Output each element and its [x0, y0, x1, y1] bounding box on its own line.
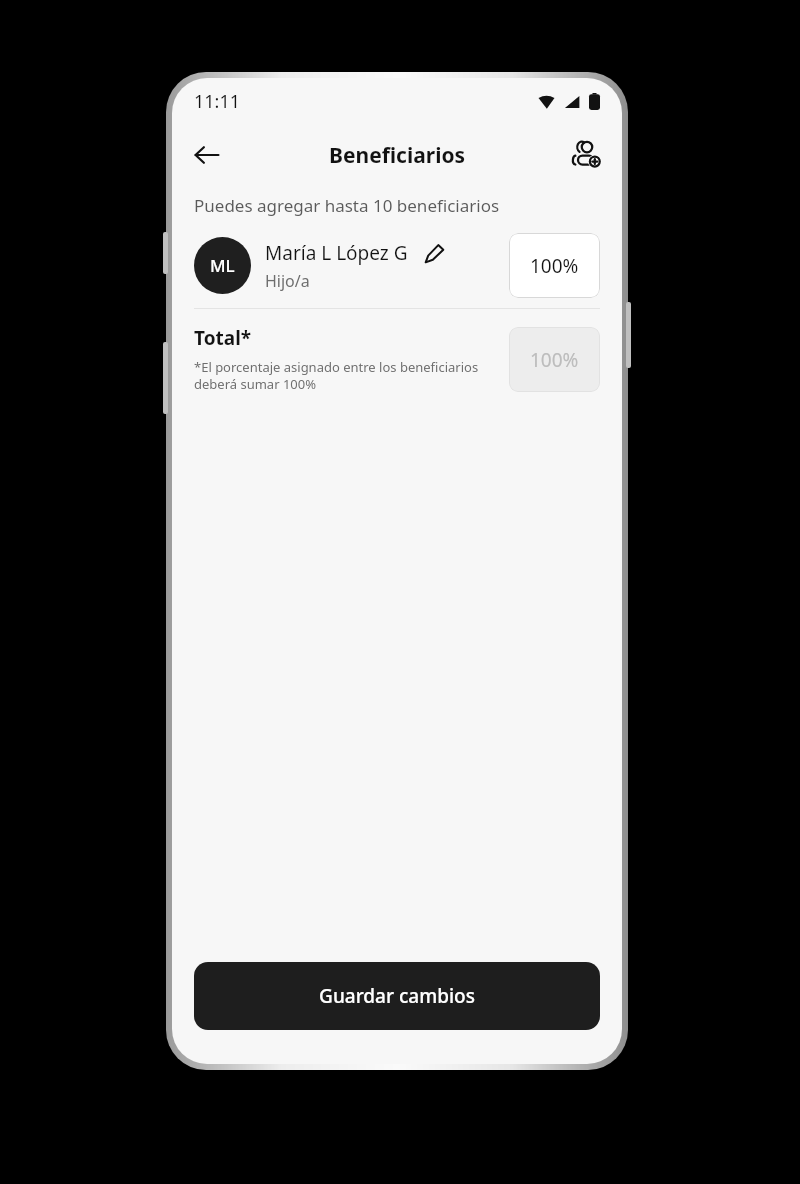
staticText: 100% — [530, 347, 579, 373]
staticText: Total* — [194, 325, 252, 351]
button[interactable]: Add beneficiary — [564, 132, 610, 178]
button[interactable]: Back — [184, 132, 230, 178]
staticText: María L López G — [265, 240, 408, 266]
staticText: Beneficiarios — [329, 141, 466, 170]
staticText: 11:11 — [194, 89, 241, 114]
staticText: ML — [210, 254, 235, 277]
button[interactable]: 100% — [509, 233, 600, 298]
button[interactable]: ML — [194, 233, 600, 298]
staticText: Hijo/a — [265, 270, 310, 292]
button[interactable]: Edit beneficiary — [420, 239, 448, 267]
button[interactable]: Guardar cambios — [194, 962, 600, 1030]
staticText: Guardar cambios — [319, 983, 475, 1009]
staticText: Puedes agregar hasta 10 beneficiarios — [194, 194, 500, 217]
staticText: 100% — [530, 253, 579, 279]
staticText: *El porcentaje asignado entre los benefi… — [194, 358, 499, 393]
